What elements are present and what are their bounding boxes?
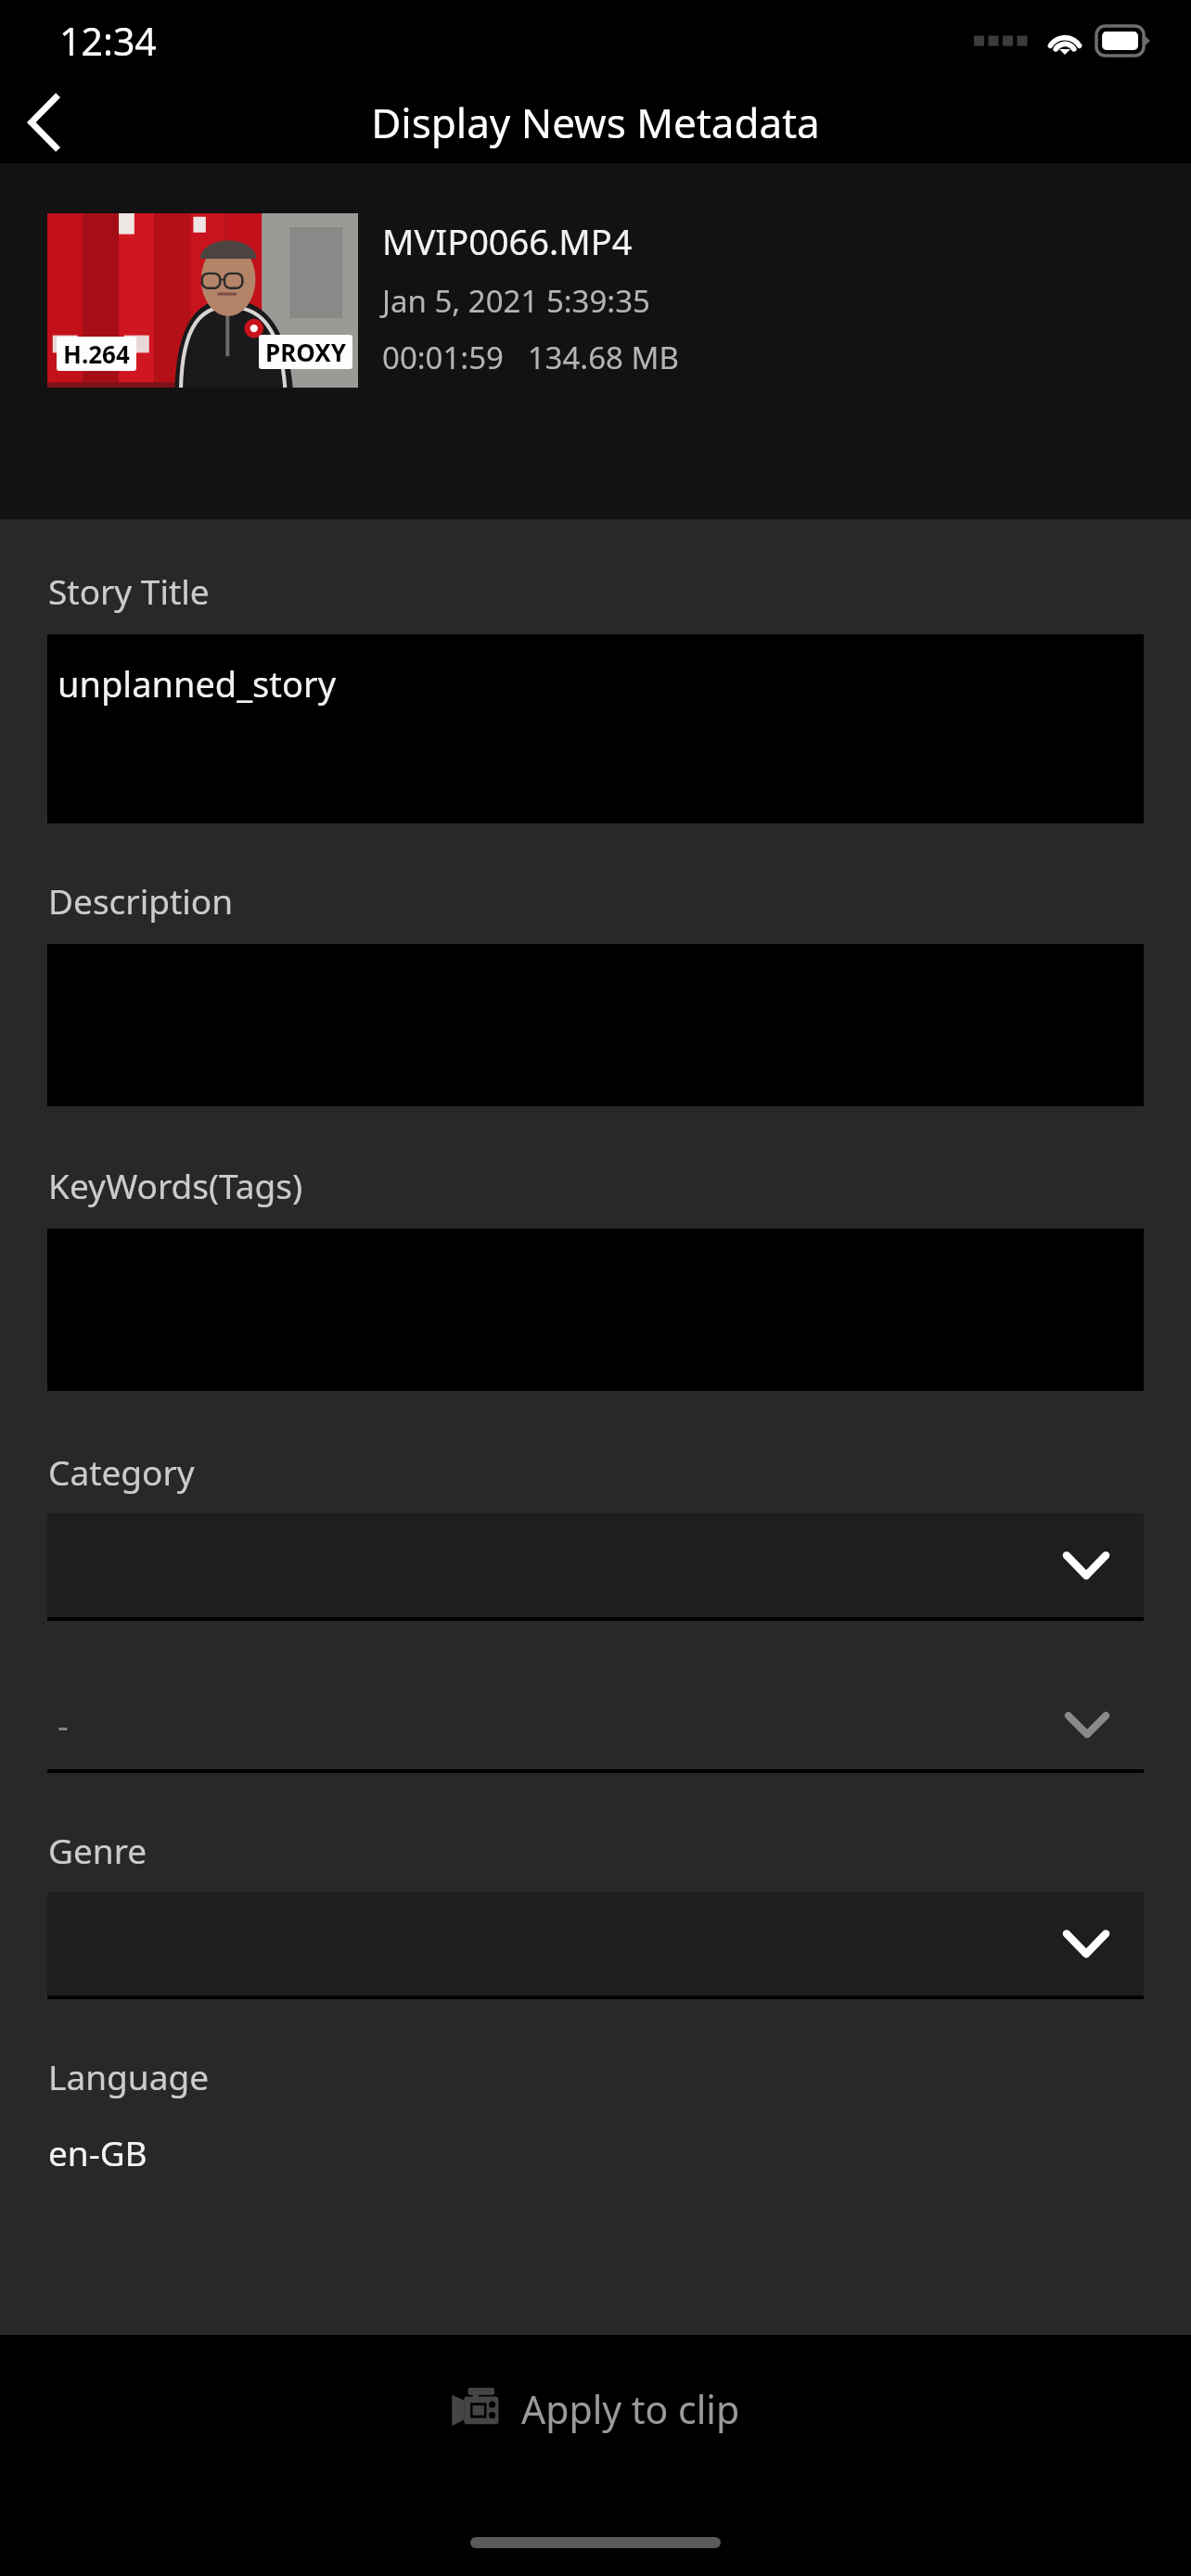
staticText: H.264 [63, 338, 130, 370]
staticText: - [58, 1702, 69, 1748]
staticText: en-GB [48, 2129, 147, 2175]
staticText: Display News Metadata [0, 95, 1191, 150]
staticText: 12:34 [59, 15, 157, 67]
staticText: unplanned_story [58, 659, 337, 708]
staticText: Jan 5, 2021 5:39:35 [382, 280, 650, 322]
button[interactable]: Open dropdown [47, 1892, 1144, 1996]
staticText: PROXY [265, 336, 346, 368]
button[interactable]: Open dropdown [47, 1513, 1144, 1617]
staticText: KeyWords(Tags) [48, 1162, 303, 1208]
staticText: Category [48, 1448, 195, 1495]
staticText: Apply to clip [521, 2383, 740, 2435]
staticText: Genre [48, 1827, 147, 1873]
staticText: Description [48, 877, 234, 924]
staticText: Story Title [48, 567, 210, 614]
staticText: Language [48, 2053, 210, 2099]
button[interactable]: Open dropdown [47, 1680, 1144, 1769]
button[interactable]: unplanned_story [47, 634, 1144, 823]
button[interactable]: Apply to clip [432, 2376, 759, 2442]
staticText: MVIP0066.MP4 [382, 217, 633, 265]
button[interactable]: Back [0, 82, 89, 163]
staticText: 00:01:59 134.68 MB [382, 337, 679, 378]
